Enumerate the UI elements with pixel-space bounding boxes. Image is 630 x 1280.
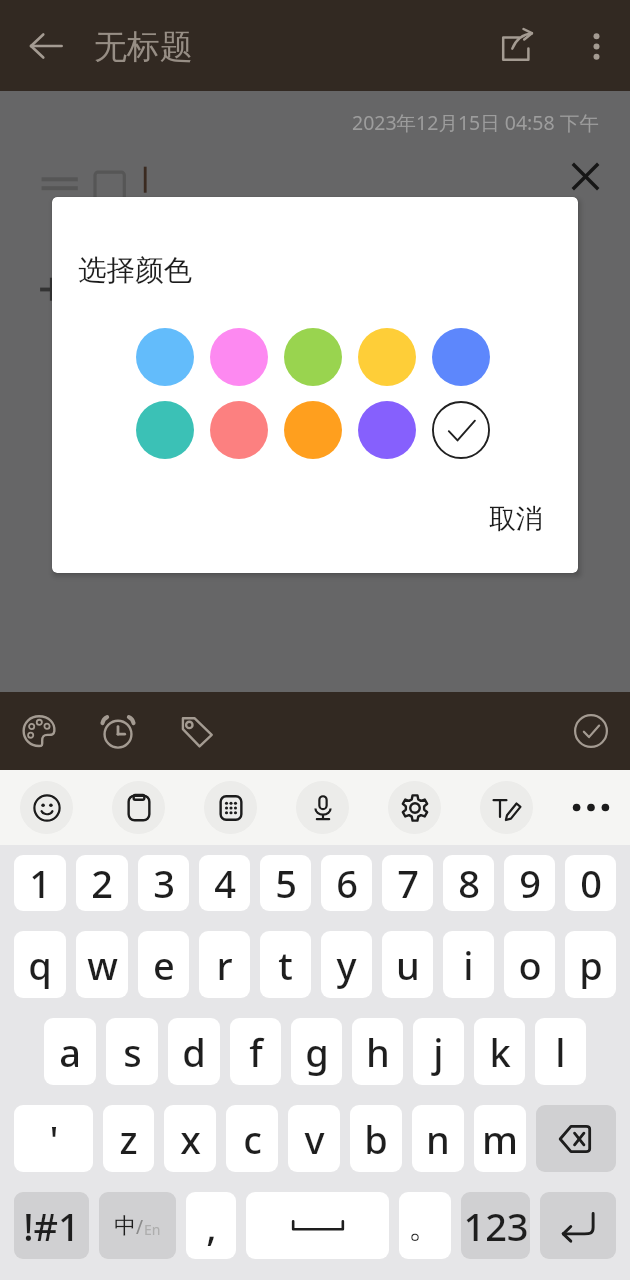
- button[interactable]: m: [474, 1105, 526, 1172]
- staticText: 。: [408, 1204, 442, 1247]
- button[interactable]: Colour: [432, 328, 490, 386]
- button[interactable]: Clipboard: [92, 770, 184, 845]
- button[interactable]: Backspace: [536, 1105, 616, 1172]
- staticText: 1: [29, 857, 51, 909]
- staticText: k: [489, 1026, 511, 1078]
- button[interactable]: r: [199, 931, 250, 998]
- button[interactable]: !#1: [14, 1192, 89, 1259]
- button[interactable]: Done: [560, 700, 622, 762]
- button[interactable]: 5: [260, 855, 311, 911]
- button[interactable]: Voice input: [276, 770, 368, 845]
- staticText: q: [28, 939, 52, 991]
- button[interactable]: More: [552, 770, 630, 845]
- button[interactable]: v: [288, 1105, 340, 1172]
- button[interactable]: Handwriting: [460, 770, 552, 845]
- staticText: x: [180, 1113, 201, 1165]
- button[interactable]: x: [164, 1105, 216, 1172]
- staticText: g: [305, 1026, 329, 1078]
- button[interactable]: 123: [461, 1192, 530, 1259]
- button[interactable]: Selected colour: [432, 401, 490, 459]
- button[interactable]: y: [321, 931, 372, 998]
- button[interactable]: Back: [16, 16, 76, 76]
- button[interactable]: Reminder: [87, 700, 149, 762]
- button[interactable]: 7: [382, 855, 433, 911]
- button[interactable]: z: [103, 1105, 154, 1172]
- staticText: !#1: [23, 1200, 80, 1252]
- staticText: 8: [458, 857, 480, 909]
- button[interactable]: 0: [565, 855, 616, 911]
- button[interactable]: a: [44, 1018, 96, 1085]
- button[interactable]: Colour: [284, 328, 342, 386]
- button[interactable]: 4: [199, 855, 250, 911]
- button[interactable]: 3: [138, 855, 189, 911]
- button[interactable]: Colour: [358, 401, 416, 459]
- button[interactable]: n: [412, 1105, 464, 1172]
- staticText: o: [518, 939, 542, 991]
- button[interactable]: c: [226, 1105, 278, 1172]
- button[interactable]: k: [474, 1018, 525, 1085]
- button[interactable]: 8: [443, 855, 494, 911]
- staticText: i: [463, 939, 474, 991]
- button[interactable]: More options: [566, 16, 626, 76]
- staticText: j: [433, 1026, 444, 1078]
- staticText: 无标题: [94, 26, 193, 68]
- button[interactable]: ': [14, 1105, 93, 1172]
- staticText: 选择颜色: [78, 253, 192, 289]
- button[interactable]: Share: [484, 14, 548, 78]
- button[interactable]: q: [14, 931, 66, 998]
- button[interactable]: 6: [321, 855, 372, 911]
- button[interactable]: Numpad: [184, 770, 276, 845]
- staticText: p: [579, 939, 603, 991]
- button[interactable]: Colour: [210, 401, 268, 459]
- button[interactable]: o: [504, 931, 555, 998]
- button[interactable]: j: [413, 1018, 464, 1085]
- button[interactable]: e: [138, 931, 189, 998]
- button[interactable]: Settings: [368, 770, 460, 845]
- staticText: 7: [397, 857, 419, 909]
- button[interactable]: Space: [246, 1192, 389, 1259]
- staticText: /: [136, 1214, 144, 1240]
- button[interactable]: Tag: [166, 700, 228, 762]
- staticText: l: [555, 1026, 566, 1078]
- button[interactable]: 1: [14, 855, 66, 911]
- button[interactable]: 9: [504, 855, 555, 911]
- staticText: 0: [580, 857, 602, 909]
- button[interactable]: t: [260, 931, 311, 998]
- staticText: f: [249, 1026, 263, 1078]
- button[interactable]: Emoji: [0, 770, 92, 845]
- staticText: m: [482, 1113, 518, 1165]
- button[interactable]: p: [565, 931, 616, 998]
- button[interactable]: b: [350, 1105, 402, 1172]
- button[interactable]: d: [168, 1018, 220, 1085]
- button[interactable]: Colour: [8, 700, 70, 762]
- button[interactable]: Enter: [540, 1192, 616, 1259]
- button[interactable]: ,: [186, 1192, 236, 1259]
- button[interactable]: i: [443, 931, 494, 998]
- staticText: a: [59, 1026, 81, 1078]
- staticText: 9: [519, 857, 541, 909]
- staticText: 123: [463, 1200, 529, 1252]
- button[interactable]: Colour: [358, 328, 416, 386]
- button[interactable]: g: [291, 1018, 342, 1085]
- staticText: u: [396, 939, 420, 991]
- button[interactable]: 。: [399, 1192, 451, 1259]
- button[interactable]: Close: [562, 153, 608, 199]
- staticText: ': [49, 1113, 59, 1165]
- staticText: 2: [91, 857, 113, 909]
- button[interactable]: Colour: [284, 401, 342, 459]
- button[interactable]: 取消: [471, 492, 561, 546]
- button[interactable]: f: [230, 1018, 281, 1085]
- button[interactable]: h: [352, 1018, 403, 1085]
- button[interactable]: u: [382, 931, 433, 998]
- button[interactable]: Colour: [210, 328, 268, 386]
- button[interactable]: Colour: [136, 401, 194, 459]
- button[interactable]: w: [76, 931, 128, 998]
- button[interactable]: Colour: [136, 328, 194, 386]
- button[interactable]: 中: [99, 1192, 176, 1259]
- button[interactable]: 2: [76, 855, 128, 911]
- button[interactable]: s: [106, 1018, 158, 1085]
- staticText: 4: [214, 857, 236, 909]
- staticText: 6: [336, 857, 358, 909]
- button[interactable]: l: [535, 1018, 586, 1085]
- staticText: w: [87, 939, 118, 991]
